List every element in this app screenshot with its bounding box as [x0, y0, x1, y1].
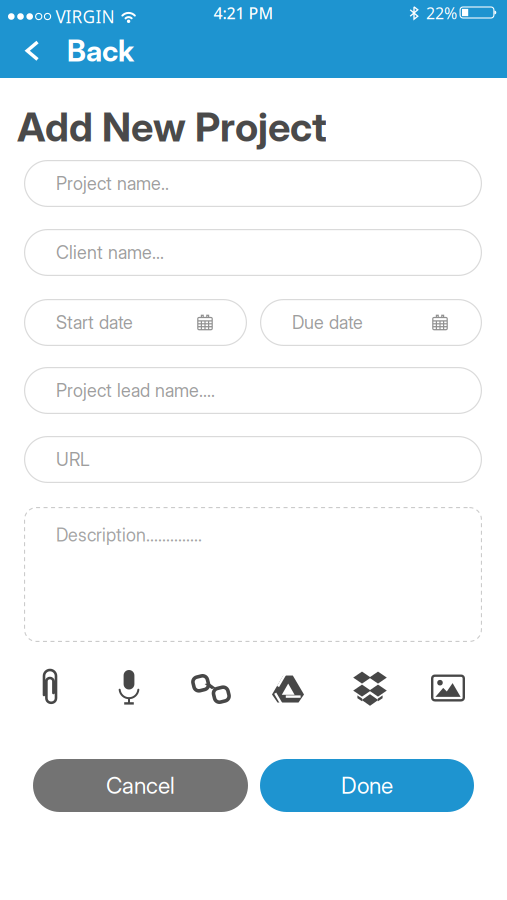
staticText: URL [56, 449, 90, 470]
button[interactable]: Add image [420, 665, 476, 711]
button[interactable]: Google Drive [260, 666, 316, 712]
staticText: Done [341, 772, 393, 799]
staticText: VIRGIN [56, 5, 115, 28]
staticText: Project name.. [56, 173, 169, 194]
button[interactable]: Description.............. [24, 507, 482, 642]
button[interactable]: Done [260, 759, 474, 812]
staticText: Back [67, 33, 134, 68]
button[interactable]: Add link [183, 666, 239, 712]
button[interactable]: Project name.. [24, 160, 482, 207]
button[interactable]: Project lead name.... [24, 367, 482, 414]
button[interactable]: Attach file [22, 664, 78, 710]
staticText: Client name... [56, 242, 164, 263]
button[interactable]: URL [24, 436, 482, 483]
staticText: Add New Project [17, 103, 327, 151]
button[interactable]: Client name... [24, 229, 482, 276]
staticText: Project lead name.... [56, 380, 215, 401]
button[interactable]: Record audio [101, 665, 157, 711]
button[interactable]: Dropbox [342, 666, 398, 712]
staticText: Start date [56, 312, 133, 333]
button[interactable]: Due date [260, 299, 482, 346]
staticText: Cancel [106, 772, 175, 799]
staticText: Due date [292, 312, 363, 333]
staticText: Description.............. [56, 524, 202, 546]
staticText: 4:21 PM [213, 2, 273, 24]
button[interactable]: Cancel [33, 759, 248, 812]
button[interactable]: Start date [24, 299, 247, 346]
staticText: 22% [426, 2, 457, 24]
button[interactable]: Back [25, 33, 134, 68]
